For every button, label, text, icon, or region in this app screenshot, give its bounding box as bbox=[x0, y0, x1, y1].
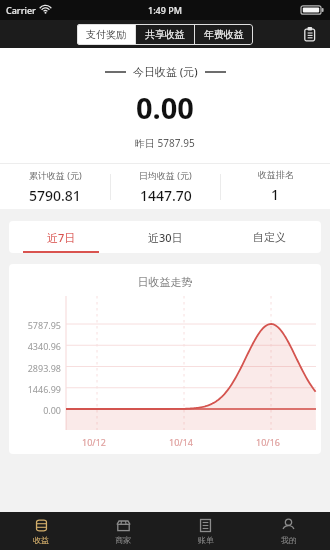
button[interactable]: 近30日 bbox=[113, 221, 217, 253]
staticText: 近7日 bbox=[47, 230, 76, 245]
staticText: 10/14 bbox=[169, 436, 193, 448]
button[interactable]: 支付奖励 bbox=[77, 24, 135, 45]
staticText: 1447.70 bbox=[140, 186, 192, 205]
button[interactable]: 近7日 bbox=[9, 221, 113, 253]
button[interactable]: 收益 bbox=[0, 512, 82, 550]
staticText: 2893.98 bbox=[13, 362, 61, 374]
staticText: 我的 bbox=[281, 535, 297, 545]
staticText: 昨日 5787.95 bbox=[135, 136, 195, 150]
staticText: 近30日 bbox=[148, 230, 183, 245]
staticText: 自定义 bbox=[253, 230, 286, 244]
button[interactable]: 共享收益 bbox=[136, 24, 194, 45]
button[interactable]: 收益排名 bbox=[221, 164, 330, 209]
staticText: 10/12 bbox=[82, 436, 106, 448]
staticText: 账单 bbox=[198, 535, 214, 545]
button[interactable]: 我的 bbox=[247, 512, 330, 550]
staticText: 1446.99 bbox=[13, 383, 61, 395]
staticText: 日收益走势 bbox=[9, 275, 321, 289]
button[interactable]: 自定义 bbox=[217, 221, 321, 253]
staticText: 0.00 bbox=[136, 88, 194, 127]
staticText: 累计收益 (元) bbox=[29, 169, 82, 181]
staticText: 今日收益 (元) bbox=[133, 64, 198, 79]
staticText: 0.00 bbox=[13, 404, 61, 416]
button[interactable]: 累计收益 (元) bbox=[0, 164, 110, 209]
button[interactable]: 账单 bbox=[297, 21, 323, 47]
staticText: 1 bbox=[271, 185, 280, 204]
staticText: 支付奖励 bbox=[86, 28, 126, 41]
staticText: 1:49 PM bbox=[148, 4, 182, 16]
button[interactable]: 日均收益 (元) bbox=[111, 164, 220, 209]
staticText: 商家 bbox=[115, 535, 131, 545]
staticText: 10/16 bbox=[256, 436, 280, 448]
staticText: Carrier bbox=[6, 4, 36, 16]
staticText: 5790.81 bbox=[29, 186, 81, 205]
button[interactable]: 账单 bbox=[164, 512, 247, 550]
staticText: 收益排名 bbox=[258, 169, 294, 180]
staticText: 收益 bbox=[33, 535, 49, 545]
button[interactable]: 年费收益 bbox=[195, 24, 253, 45]
staticText: 5787.95 bbox=[13, 319, 61, 331]
staticText: 年费收益 bbox=[204, 28, 244, 41]
staticText: 4340.96 bbox=[13, 340, 61, 352]
staticText: 共享收益 bbox=[145, 28, 185, 41]
staticText: 日均收益 (元) bbox=[139, 169, 192, 181]
button[interactable]: 商家 bbox=[82, 512, 164, 550]
